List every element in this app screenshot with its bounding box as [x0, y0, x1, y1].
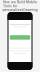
- button[interactable]: [10, 35, 30, 40]
- staticText: How we Build Mobile Tools for: [3, 0, 37, 8]
- staticText: personalised learning: [2, 8, 37, 12]
